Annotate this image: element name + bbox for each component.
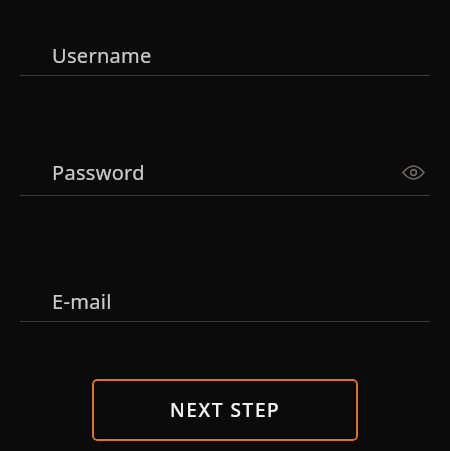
button[interactable]: E-mail [0,288,450,315]
button[interactable]: Password [0,155,450,189]
button[interactable]: Show password [396,155,430,189]
staticText: Password [52,159,145,186]
button[interactable]: NEXT STEP [92,379,358,441]
staticText: Username [52,42,152,69]
staticText: NEXT STEP [170,397,281,423]
staticText: E-mail [52,288,112,315]
button[interactable]: Username [0,42,450,69]
